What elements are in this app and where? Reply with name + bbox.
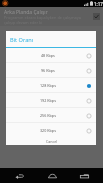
staticText: 128 Kbps: [40, 83, 56, 88]
staticText: 320 Kbps: [40, 128, 56, 133]
button[interactable]: Home: [39, 168, 65, 183]
staticText: 96 Kbps: [41, 68, 55, 73]
button[interactable]: Recents: [71, 168, 97, 183]
button[interactable]: 48 Kbps: [6, 48, 96, 63]
button[interactable]: Cancel: [6, 138, 96, 145]
button[interactable]: 256 Kbps: [6, 108, 96, 123]
button[interactable]: 320 Kbps: [6, 123, 96, 138]
button[interactable]: 128 Kbps: [6, 78, 96, 93]
staticText: 256 Kbps: [40, 113, 56, 118]
button[interactable]: Back: [6, 168, 32, 183]
button[interactable]: Enabled: [93, 13, 100, 20]
staticText: 1:17: [94, 1, 103, 7]
staticText: 48 Kbps: [41, 53, 55, 58]
staticText: 192 Kbps: [40, 98, 56, 103]
staticText: Bit Oranı: [10, 36, 33, 44]
staticText: Cancel: [46, 139, 57, 144]
staticText: Programın ekranı kapalıyken de çalışmaya…: [4, 15, 81, 25]
button[interactable]: 96 Kbps: [6, 63, 96, 78]
button[interactable]: 192 Kbps: [6, 93, 96, 108]
staticText: Arka Planda Çalışır: [4, 9, 48, 16]
